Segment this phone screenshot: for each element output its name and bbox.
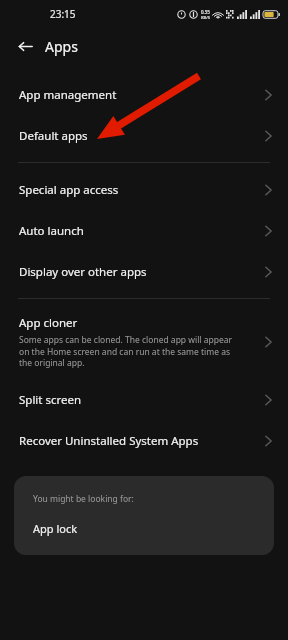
button[interactable]: App management [0, 74, 288, 115]
staticText: KB/S [201, 15, 210, 20]
staticText: Special app access [19, 182, 119, 198]
staticText: Auto launch [19, 223, 84, 239]
staticText: App lock [33, 521, 78, 536]
staticText: App cloner [19, 315, 78, 331]
button[interactable]: Auto launch [0, 210, 288, 251]
staticText: Apps [45, 37, 78, 56]
button[interactable]: Display over other apps [0, 251, 288, 292]
staticText: 0.55 [201, 9, 210, 15]
staticText: Default apps [19, 128, 88, 144]
staticText: Recover Uninstalled System Apps [19, 433, 199, 449]
button[interactable]: Special app access [0, 169, 288, 210]
staticText: Display over other apps [19, 264, 147, 280]
staticText: 23:15 [50, 7, 76, 21]
button[interactable]: Recover Uninstalled System Apps [0, 420, 288, 461]
staticText: Split screen [19, 392, 82, 408]
staticText: You might be looking for: [33, 493, 134, 505]
staticText: App management [19, 87, 117, 103]
button[interactable]: Back [12, 33, 38, 59]
button[interactable]: Default apps [0, 115, 288, 156]
button[interactable]: App cloner [0, 305, 288, 379]
button[interactable]: Split screen [0, 379, 288, 420]
staticText: Some apps can be cloned. The cloned app … [19, 334, 242, 369]
button[interactable]: App lock [33, 521, 78, 536]
